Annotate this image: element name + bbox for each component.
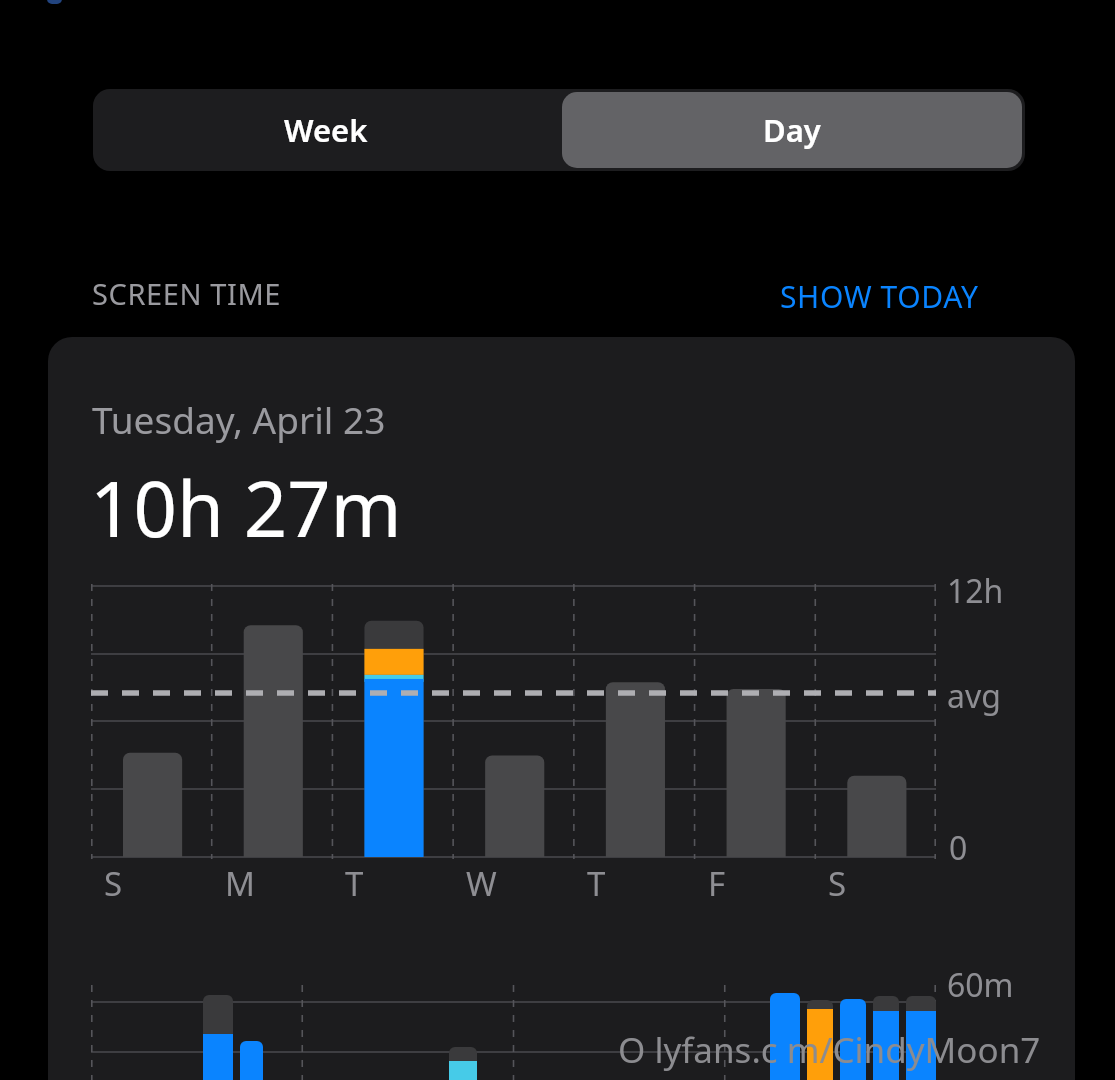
button[interactable]: SCREEN TIME [92,274,282,313]
staticText: Tuesday, April 23 [92,394,386,444]
staticText: avg [947,674,1001,718]
button[interactable]: SHOW TODAY [780,276,979,317]
staticText: W [466,861,497,906]
staticText: M [225,861,255,906]
staticText: S [104,861,123,906]
staticText: Day [763,109,821,151]
staticText: Week [284,109,368,151]
staticText: S [828,861,847,906]
staticText: T [587,861,606,906]
staticText: T [345,861,364,906]
staticText: 60m [947,963,1014,1007]
other: Weekly screen time chart [91,584,936,859]
staticText: 0 [949,826,968,870]
other: Hourly usage chart [91,985,936,1080]
button[interactable]: Day [562,92,1022,168]
staticText: SHOW TODAY [780,276,979,317]
staticText: O lyfans.c m/CindyMoon7 [618,1026,1041,1074]
button[interactable]: Week [93,89,559,171]
staticText: 10h 27m [90,456,402,560]
staticText: 12h [947,569,1004,613]
staticText: SCREEN TIME [92,274,282,313]
staticText: F [708,861,726,906]
button[interactable] [48,337,1075,1080]
